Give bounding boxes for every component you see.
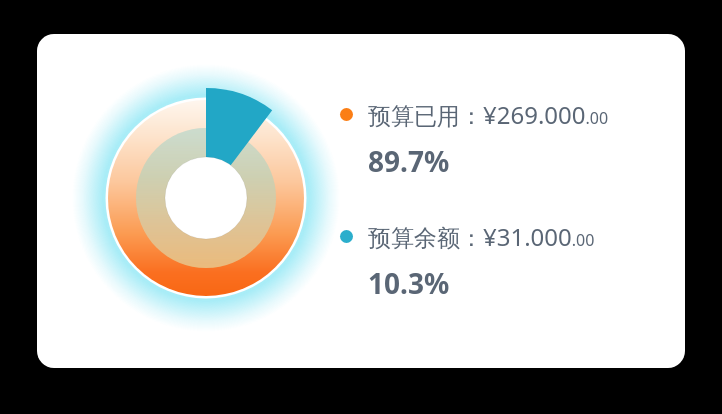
staticText: 10.3% <box>368 264 450 302</box>
other: Budget usage donut chart <box>71 63 341 333</box>
button[interactable]: 预算余额：¥31.000.00 <box>340 220 599 302</box>
button[interactable]: 预算已用：¥269.000.00 <box>340 98 613 180</box>
staticText: 预算余额：¥31.000.00 <box>368 220 595 253</box>
button[interactable]: Budget usage donut chart <box>37 34 685 368</box>
staticText: 预算已用：¥269.000.00 <box>368 98 609 131</box>
staticText: 89.7% <box>368 142 450 180</box>
